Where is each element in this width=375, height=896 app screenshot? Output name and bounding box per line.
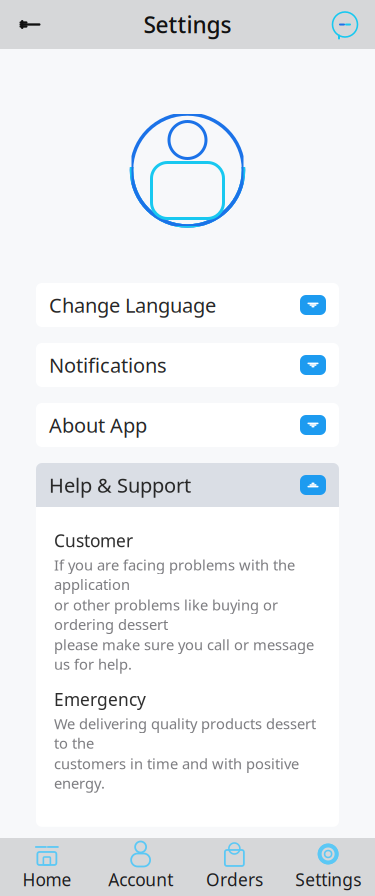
staticText: Notifications <box>49 352 167 378</box>
staticText: Help & Support <box>49 472 191 498</box>
button[interactable]: About App <box>36 403 339 447</box>
button[interactable]: Messages <box>323 2 367 46</box>
button[interactable]: Back <box>8 2 52 46</box>
staticText: Settings <box>295 868 361 891</box>
staticText: Change Language <box>49 292 216 318</box>
button[interactable]: Sign out <box>36 883 339 896</box>
staticText: Orders <box>206 868 263 891</box>
button[interactable]: Notifications <box>36 343 339 387</box>
button[interactable]: Help & Support <box>36 463 339 507</box>
staticText: Account <box>108 868 173 891</box>
staticText: About App <box>49 412 147 438</box>
staticText: We delivering quality products dessert t… <box>54 714 316 753</box>
button[interactable]: Change Language <box>36 283 339 327</box>
staticText: Home <box>22 868 71 891</box>
button[interactable]: Home <box>0 838 94 896</box>
staticText: Customer <box>54 529 133 552</box>
staticText: please make sure you call or message us … <box>54 635 314 674</box>
button[interactable]: Account <box>94 838 188 896</box>
staticText: customers in time and with positive ener… <box>54 754 299 793</box>
button[interactable]: Settings <box>281 838 375 896</box>
staticText: Settings <box>143 9 231 39</box>
staticText: If you are facing problems with the appl… <box>54 555 295 594</box>
button[interactable]: Orders <box>187 838 281 896</box>
staticText: or other problems like buying or orderin… <box>54 595 278 634</box>
staticText: Emergency <box>54 688 146 711</box>
